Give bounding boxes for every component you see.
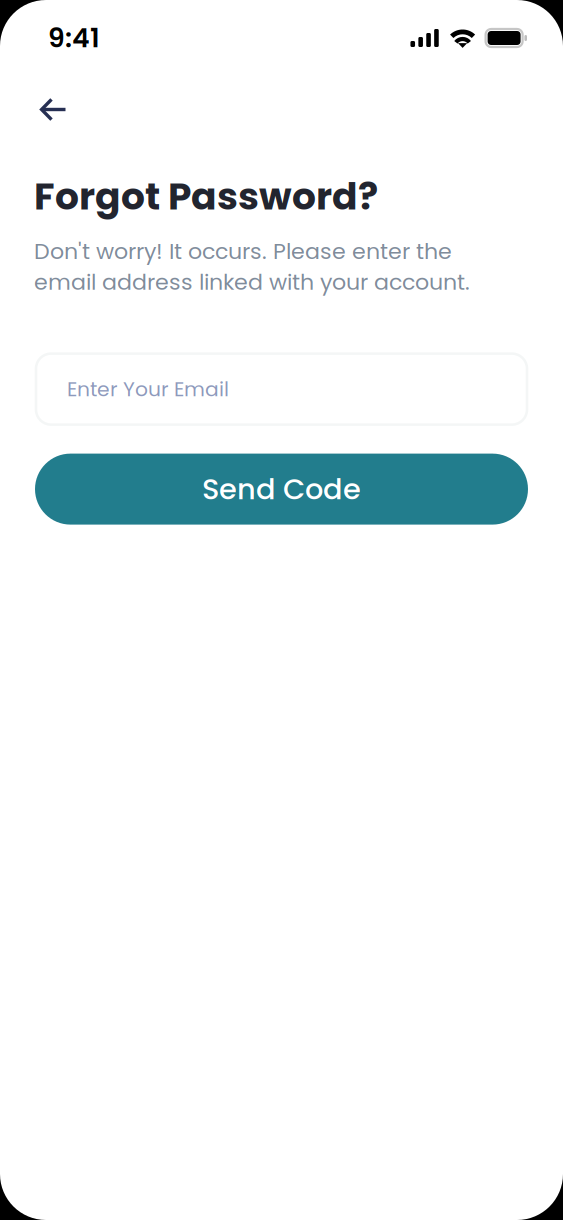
button[interactable]: Send Code [35,454,528,525]
staticText: 9:41 [48,19,100,57]
staticText: Enter Your Email [67,375,229,403]
staticText: Forgot Password? [34,170,378,223]
staticText: Send Code [202,469,361,509]
button[interactable]: Back [31,88,76,131]
staticText: Don't worry! It occurs. Please enter the… [34,236,470,298]
